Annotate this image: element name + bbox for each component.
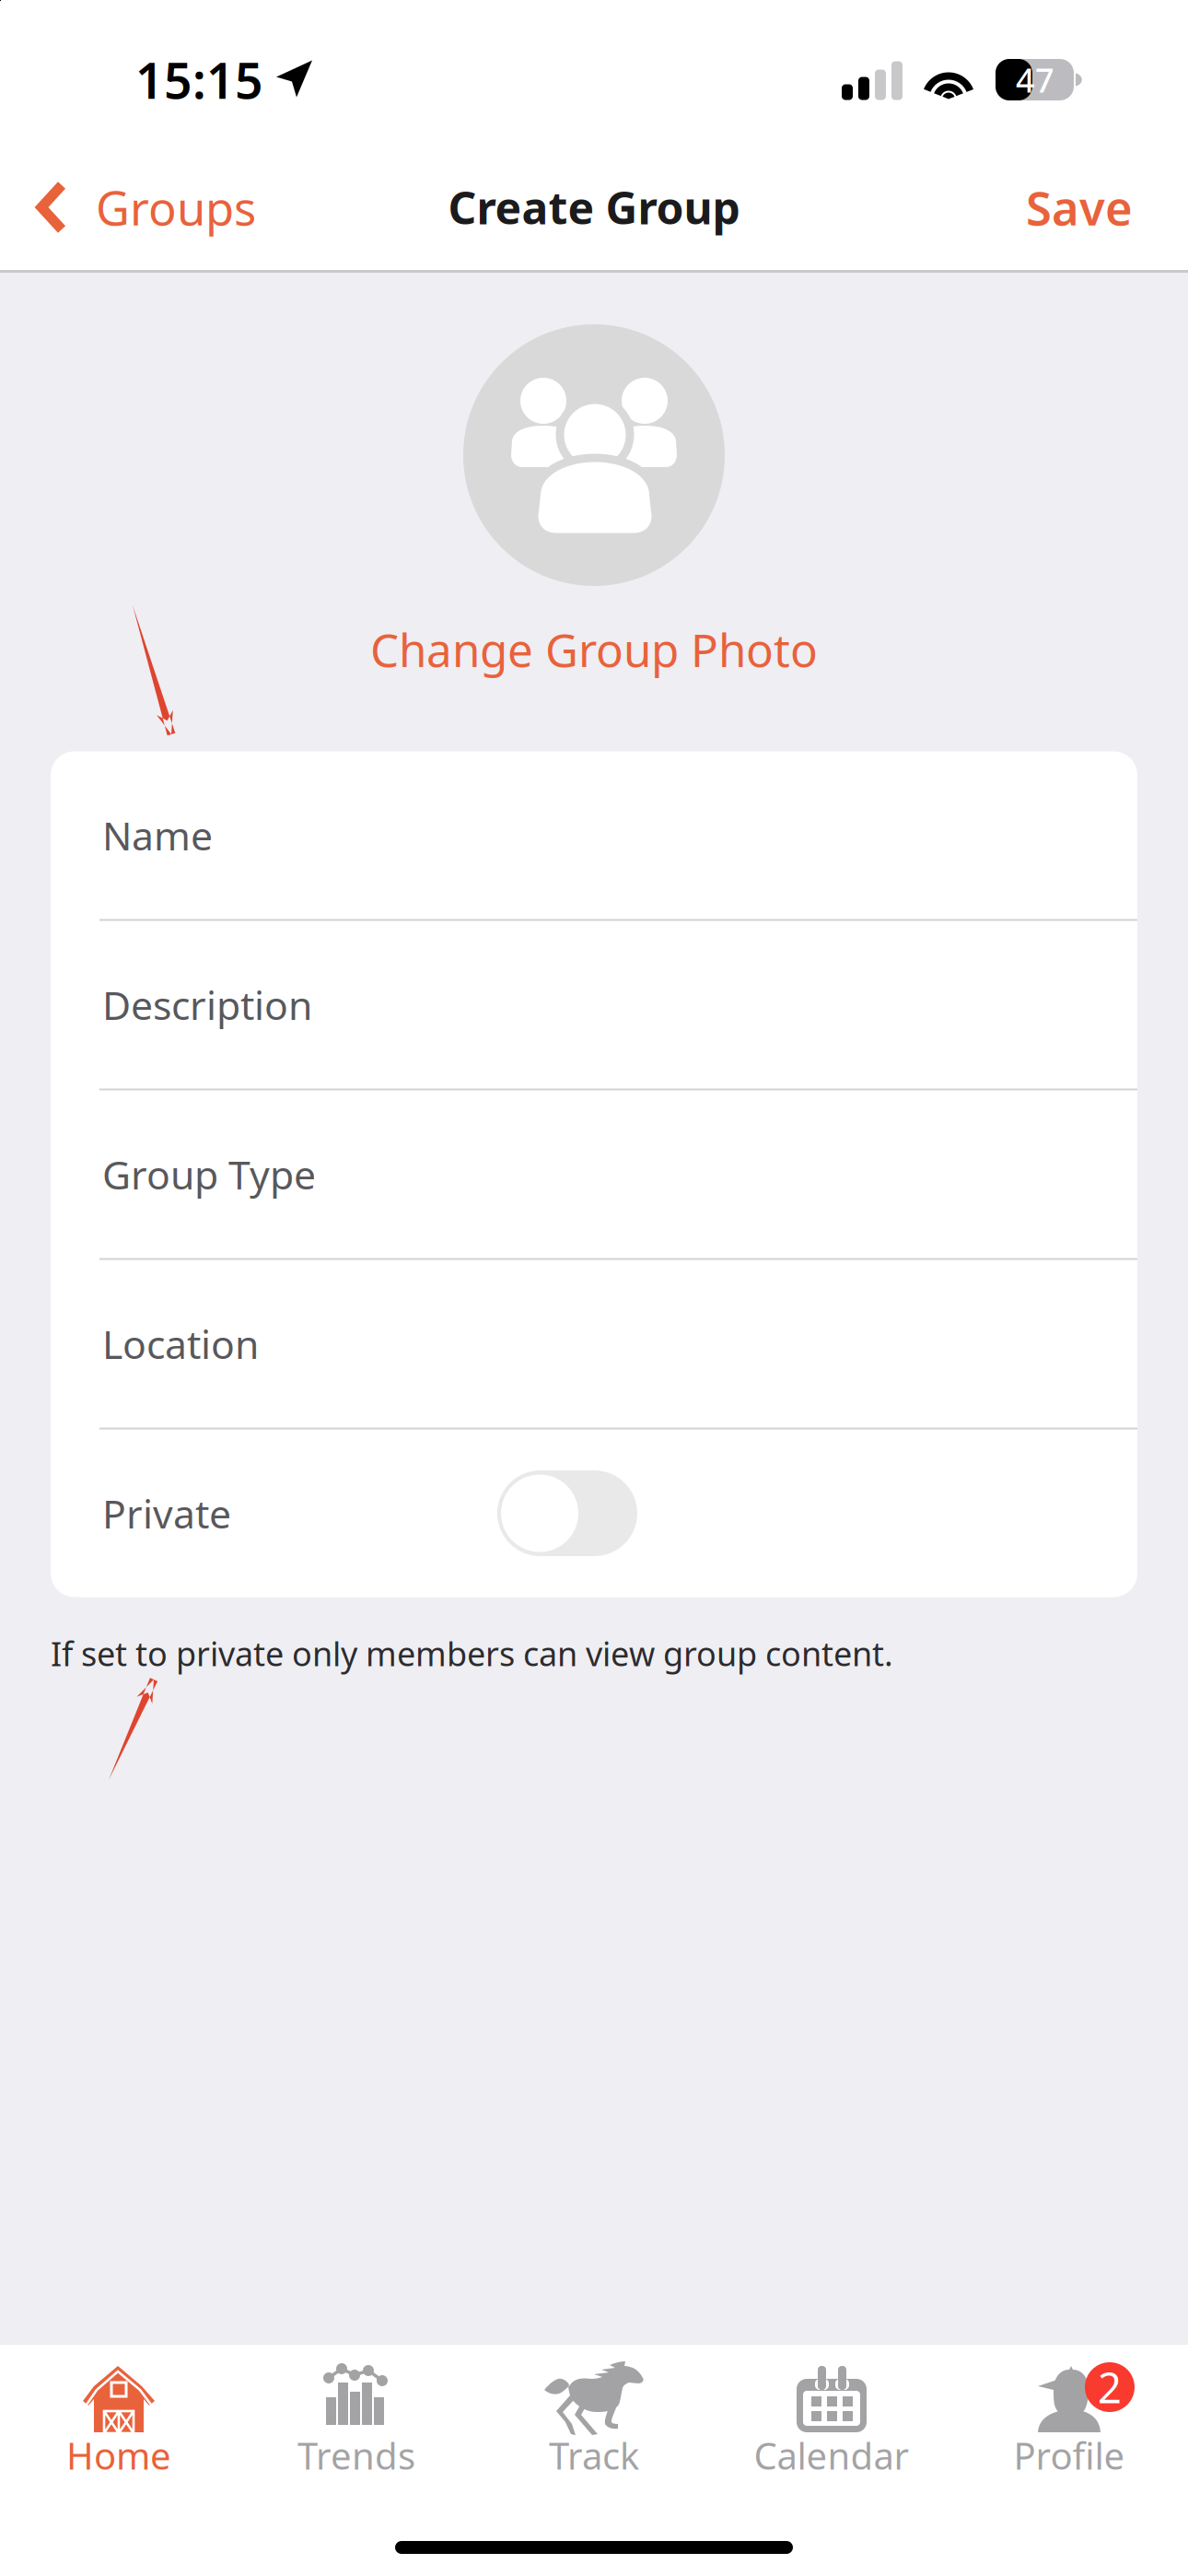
staticText: Profile <box>1013 2431 1125 2480</box>
staticText: 15:15 <box>135 47 263 112</box>
button[interactable]: Save <box>989 160 1188 255</box>
button[interactable]: Location <box>51 1260 1137 1428</box>
button[interactable]: Description <box>51 921 1137 1089</box>
button[interactable]: Groups <box>0 160 278 255</box>
button[interactable]: 2 <box>950 2362 1188 2475</box>
staticText: Private <box>102 1487 231 1539</box>
staticText: Track <box>549 2431 639 2480</box>
button[interactable]: Trends <box>238 2362 475 2475</box>
staticText: Change Group Photo <box>370 619 818 679</box>
staticText: 47 <box>1016 58 1054 102</box>
staticText: Home <box>66 2431 171 2480</box>
staticText: Calendar <box>754 2431 909 2480</box>
staticText: Name <box>102 809 213 861</box>
staticText: Save <box>1026 176 1133 238</box>
staticText: If set to private only members can view … <box>51 1631 893 1675</box>
staticText: Location <box>102 1318 259 1370</box>
button[interactable]: Private <box>51 1429 1137 1597</box>
button[interactable]: Home <box>0 2362 238 2475</box>
staticText: 2 <box>1098 2359 1122 2415</box>
staticText: Groups <box>96 176 256 238</box>
button[interactable]: Track <box>475 2362 713 2475</box>
staticText: Create Group <box>448 178 740 237</box>
button[interactable]: Group Type <box>51 1090 1137 1258</box>
staticText: Group Type <box>102 1148 316 1200</box>
button[interactable]: Name <box>51 751 1137 919</box>
staticText: Trends <box>297 2431 415 2480</box>
button[interactable]: Change Group Photo <box>333 603 855 696</box>
button[interactable]: Calendar <box>713 2362 950 2475</box>
staticText: Description <box>102 979 312 1031</box>
